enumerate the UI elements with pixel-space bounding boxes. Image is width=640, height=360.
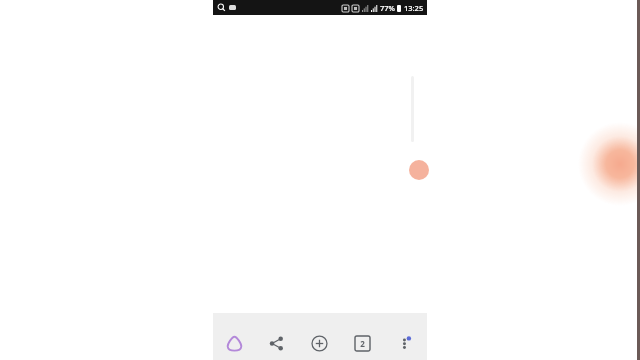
button[interactable]: Tabs xyxy=(341,313,384,360)
staticText: 2 xyxy=(360,338,365,349)
button[interactable]: Keep notes xyxy=(213,313,255,360)
button[interactable]: More options xyxy=(384,313,427,360)
button[interactable]: Add xyxy=(298,313,341,360)
button[interactable]: Share xyxy=(255,313,298,360)
staticText: 77% xyxy=(380,3,395,13)
staticText: 13:25 xyxy=(404,3,424,13)
